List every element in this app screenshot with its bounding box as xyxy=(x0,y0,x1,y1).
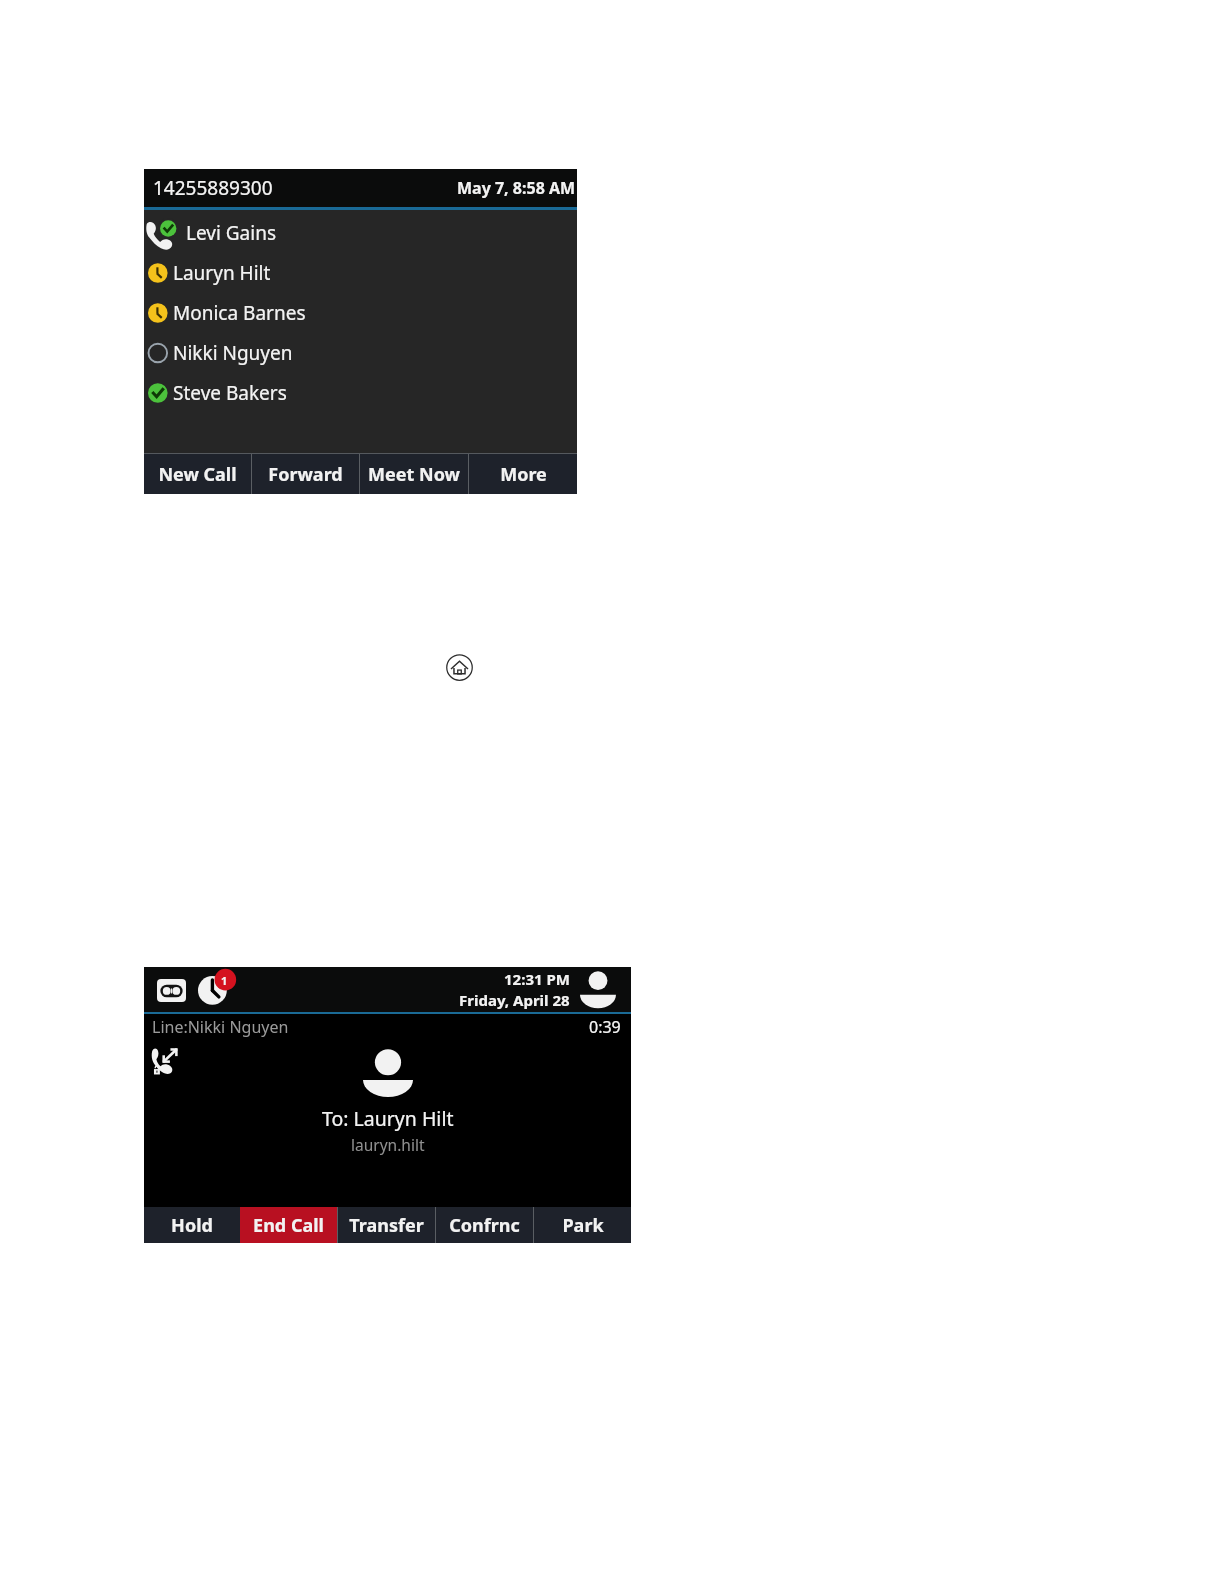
button[interactable]: Profile xyxy=(580,971,616,1009)
staticText: 0:39 xyxy=(589,1016,621,1038)
staticText: Forward xyxy=(268,462,343,487)
button[interactable]: Levi Gains xyxy=(144,213,577,253)
staticText: May 7, 8:58 AM xyxy=(457,177,576,199)
button[interactable]: Steve Bakers xyxy=(144,373,577,413)
button[interactable]: Park xyxy=(534,1207,631,1243)
staticText: Transfer xyxy=(349,1213,424,1238)
button[interactable]: Monica Barnes xyxy=(144,293,577,333)
button[interactable]: Voicemail xyxy=(157,979,186,1002)
button[interactable]: Meet Now xyxy=(360,454,468,494)
staticText: Confrnc xyxy=(449,1213,520,1238)
staticText: Steve Bakers xyxy=(173,380,287,406)
button[interactable]: Forward xyxy=(252,454,359,494)
staticText: To: Lauryn Hilt xyxy=(322,1105,454,1132)
staticText: lauryn.hilt xyxy=(351,1134,425,1155)
other: Secure call xyxy=(151,1048,178,1075)
staticText: Hold xyxy=(171,1213,213,1238)
staticText: 12:31 PM xyxy=(504,969,570,989)
button[interactable]: Nikki Nguyen xyxy=(144,333,577,373)
button[interactable]: Recent calls xyxy=(198,971,234,1007)
staticText: Meet Now xyxy=(368,462,460,487)
staticText: New Call xyxy=(158,462,237,487)
staticText: 1 xyxy=(221,973,228,988)
staticText: Lauryn Hilt xyxy=(173,260,271,286)
button[interactable]: Transfer xyxy=(338,1207,435,1243)
button[interactable]: Lauryn Hilt xyxy=(144,253,577,293)
staticText: 14255889300 xyxy=(153,175,273,201)
staticText: Monica Barnes xyxy=(173,300,306,326)
button[interactable]: End Call xyxy=(240,1207,337,1243)
button[interactable]: New Call xyxy=(144,454,251,494)
staticText: End Call xyxy=(253,1213,324,1238)
staticText: Line:Nikki Nguyen xyxy=(152,1016,289,1038)
staticText: Friday, April 28 xyxy=(459,990,570,1010)
staticText: Levi Gains xyxy=(186,220,277,246)
staticText: More xyxy=(500,462,547,487)
staticText: Nikki Nguyen xyxy=(173,340,293,366)
staticText: Park xyxy=(562,1213,604,1238)
button[interactable]: Home xyxy=(446,654,473,681)
button[interactable]: Confrnc xyxy=(436,1207,533,1243)
button[interactable]: Hold xyxy=(144,1207,240,1243)
button[interactable]: More xyxy=(469,454,577,494)
